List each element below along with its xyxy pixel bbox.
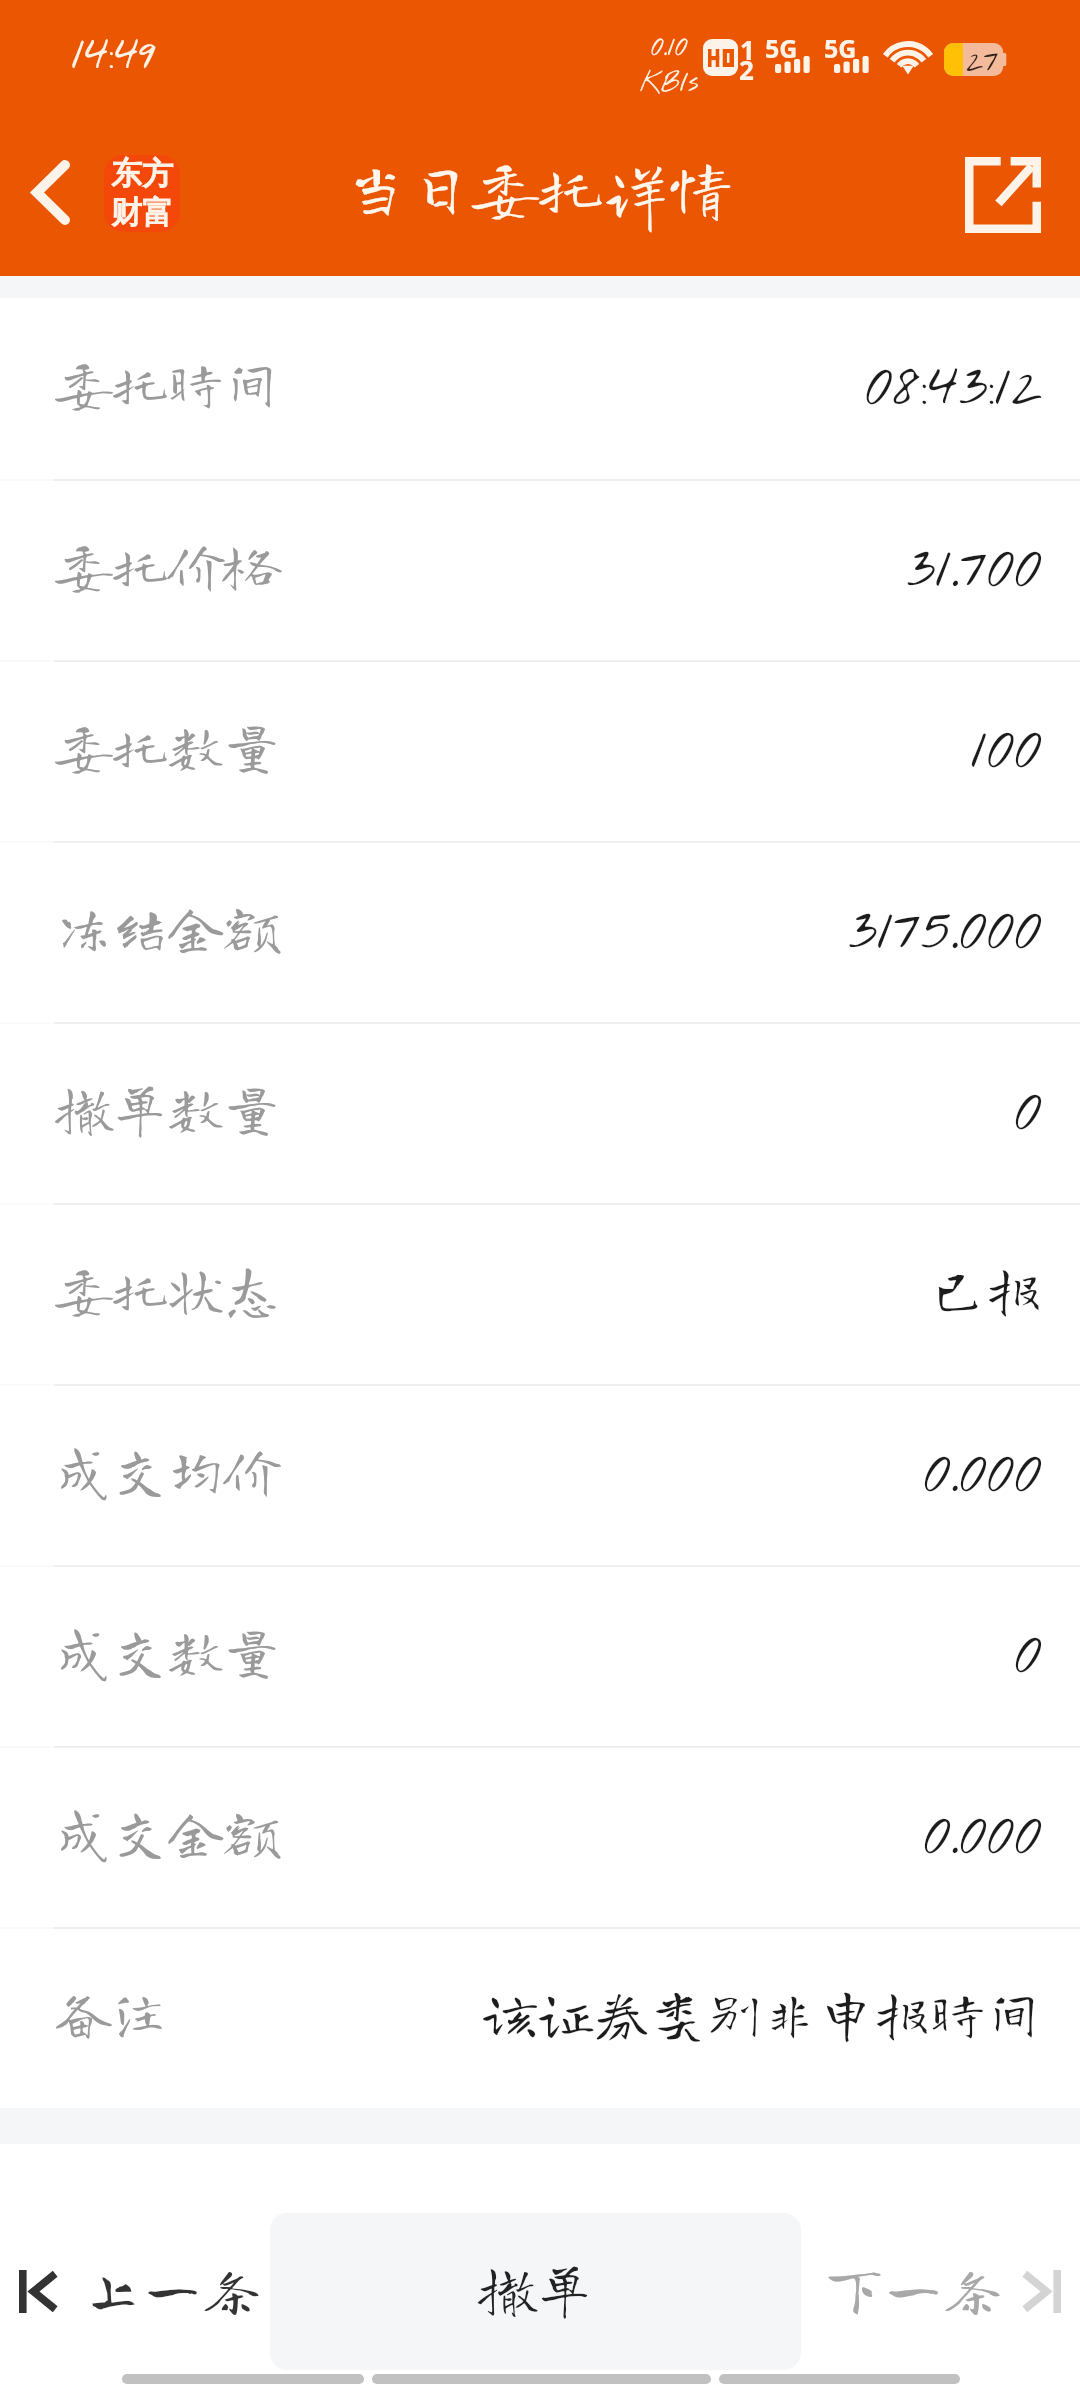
button[interactable]: 上一条	[0, 2213, 280, 2370]
staticText: 1	[740, 32, 755, 67]
staticText: 5G	[824, 31, 857, 65]
button[interactable]: 委托状态	[0, 1205, 1080, 1384]
staticText: 撤单	[479, 2260, 593, 2317]
staticText: 08:43:12	[865, 350, 1042, 427]
staticText: 委托时间	[56, 355, 280, 411]
staticText: 成交均价	[56, 1442, 280, 1498]
button[interactable]: 成交数量	[0, 1567, 1080, 1746]
staticText: 委托数量	[56, 718, 280, 774]
button[interactable]: 下一条	[800, 2213, 1080, 2370]
staticText: 成交金额	[56, 1804, 280, 1860]
button[interactable]: 委托时间	[0, 298, 1080, 479]
staticText: 0.10	[651, 30, 688, 66]
button[interactable]: 备注	[0, 1929, 1080, 2108]
staticText: 31.700	[906, 532, 1042, 609]
staticText: 5G	[765, 31, 798, 65]
button[interactable]: 成交均价	[0, 1386, 1080, 1565]
button[interactable]: 撤单	[270, 2213, 801, 2370]
staticText: 2	[739, 52, 754, 87]
staticText: 财富	[111, 193, 173, 231]
button[interactable]: Back	[7, 148, 95, 236]
staticText: 上一条	[84, 2259, 262, 2318]
staticText: 撤单数量	[56, 1080, 280, 1136]
button[interactable]: 撤单数量	[0, 1024, 1080, 1203]
staticText: 委托价格	[56, 537, 280, 593]
staticText: 0.000	[923, 1799, 1042, 1876]
button[interactable]: 委托价格	[0, 481, 1080, 660]
staticText: 下一条	[825, 2259, 1003, 2318]
staticText: 100	[971, 713, 1042, 790]
staticText: 东方	[111, 155, 173, 193]
staticText: 该证券类别非申报时间	[482, 1985, 1042, 2041]
button[interactable]: 东方财富	[104, 155, 180, 232]
button[interactable]: 成交金额	[0, 1748, 1080, 1927]
button[interactable]: 冻结金额	[0, 843, 1080, 1022]
staticText: 已报	[930, 1261, 1042, 1317]
staticText: 成交数量	[56, 1623, 280, 1679]
button[interactable]: 委托数量	[0, 662, 1080, 841]
staticText: 0	[1014, 1075, 1042, 1152]
staticText: 3175.000	[848, 894, 1042, 971]
staticText: 0	[1014, 1618, 1042, 1695]
staticText: 14:49	[72, 25, 157, 86]
staticText: 冻结金额	[56, 899, 280, 955]
staticText: 备注	[56, 1985, 168, 2041]
button[interactable]: Share	[948, 140, 1058, 250]
staticText: 当日委托详情	[343, 155, 734, 220]
staticText: KB/s	[640, 66, 699, 102]
staticText: 委托状态	[56, 1261, 280, 1317]
staticText: 0.000	[923, 1437, 1042, 1514]
staticText: 27	[966, 41, 999, 74]
